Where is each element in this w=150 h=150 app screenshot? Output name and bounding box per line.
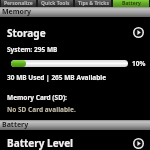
button[interactable]: Storage (0, 25, 150, 40)
button[interactable]: Battery (113, 0, 149, 7)
staticText: Battery Level (7, 136, 74, 150)
button[interactable]: Quick Tools (38, 0, 73, 7)
button[interactable]: Battery Level (0, 136, 150, 150)
staticText: Memory Card (SD): (7, 93, 67, 102)
button[interactable]: Storage details (131, 25, 146, 40)
staticText: Quick Tools (41, 0, 70, 7)
staticText: Storage (7, 26, 46, 40)
staticText: Tips & Tricks (78, 0, 109, 7)
button[interactable]: Personalize (1, 0, 36, 7)
staticText: Battery (122, 0, 141, 7)
staticText: Memory (2, 7, 32, 17)
staticText: 30 MB Used | 265 MB Available (7, 73, 107, 82)
staticText: 10% (132, 59, 146, 68)
staticText: Personalize (4, 0, 33, 7)
button[interactable]: Tips & Tricks (75, 0, 111, 7)
staticText: System: 295 MB (7, 45, 58, 54)
staticText: No SD Card available. (7, 105, 76, 114)
staticText: Battery (2, 120, 29, 130)
button[interactable]: Battery level details (131, 136, 146, 150)
